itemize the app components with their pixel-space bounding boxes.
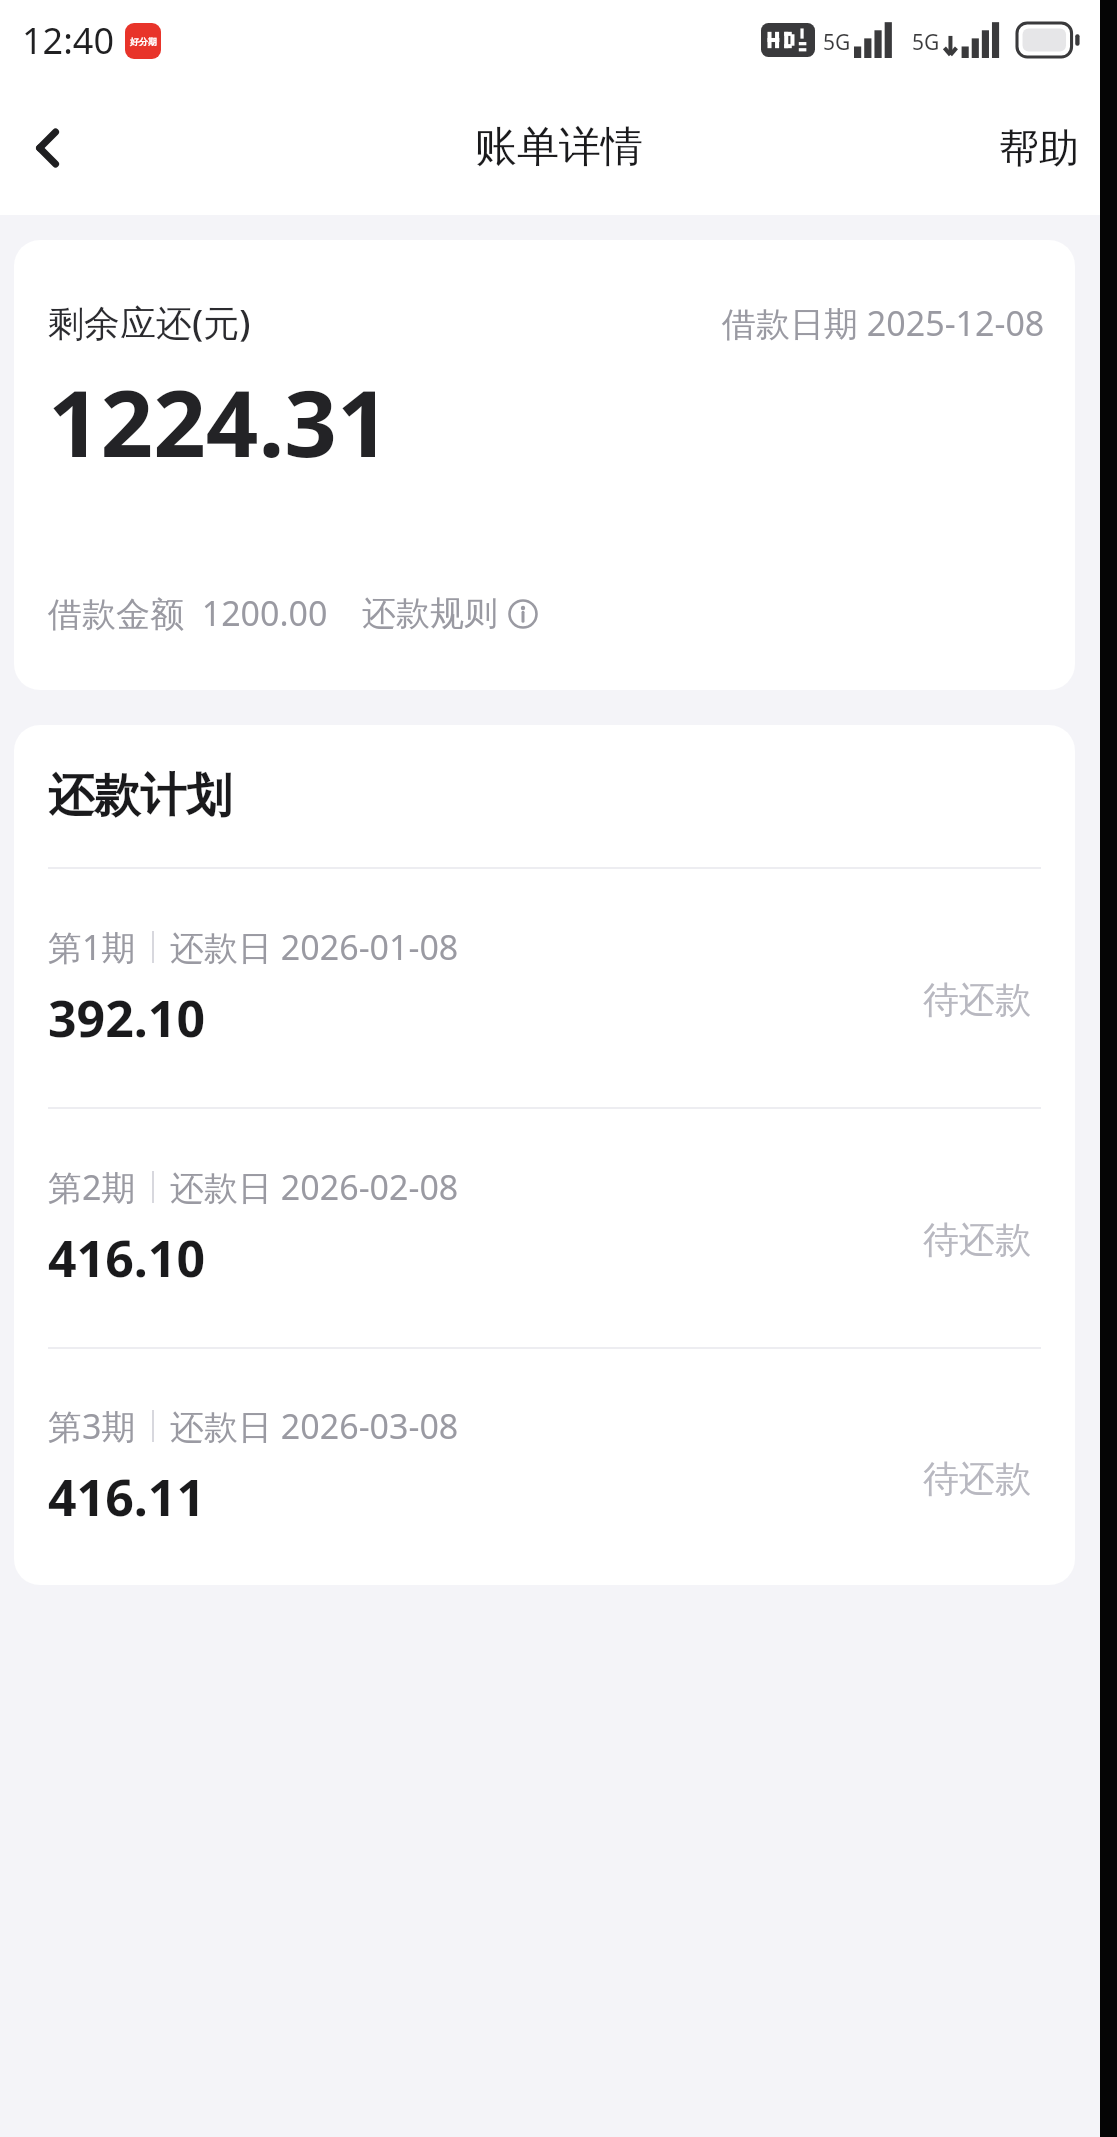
staticText: 账单详情	[475, 121, 643, 174]
staticText: 借款金额 1200.00	[48, 590, 328, 636]
staticText: 392.10	[48, 984, 206, 1052]
button[interactable]: 第3期	[14, 1349, 1075, 1585]
staticText: 416.10	[48, 1224, 206, 1292]
button[interactable]: 剩余应还(元)	[14, 240, 1075, 690]
staticText: 416.11	[48, 1463, 206, 1531]
staticText: 12:40	[22, 16, 115, 65]
staticText: 第1期	[48, 924, 136, 970]
staticText: 还款日 2026-02-08	[170, 1164, 459, 1210]
staticText: 待还款	[923, 1456, 1031, 1501]
button[interactable]: Back	[0, 100, 96, 196]
staticText: 好分期	[130, 36, 157, 47]
staticText: 待还款	[923, 1217, 1031, 1262]
button[interactable]: 第1期	[14, 869, 1075, 1107]
staticText: 帮助	[999, 123, 1079, 173]
staticText: 还款日 2026-01-08	[170, 924, 459, 970]
button[interactable]: 第2期	[14, 1109, 1075, 1347]
staticText: 5G	[823, 28, 851, 57]
staticText: 还款日 2026-03-08	[170, 1403, 459, 1449]
staticText: 剩余应还(元)	[48, 298, 251, 347]
button[interactable]: 帮助	[961, 99, 1117, 197]
button[interactable]: 还款规则	[362, 592, 538, 635]
staticText: 5G	[912, 28, 940, 57]
staticText: 1224.31	[48, 359, 390, 484]
staticText: 还款规则	[362, 592, 498, 635]
staticText: 还款计划	[48, 767, 232, 825]
staticText: 待还款	[923, 977, 1031, 1022]
staticText: 第3期	[48, 1403, 136, 1449]
staticText: 借款日期 2025-12-08	[722, 300, 1045, 346]
staticText: 第2期	[48, 1164, 136, 1210]
